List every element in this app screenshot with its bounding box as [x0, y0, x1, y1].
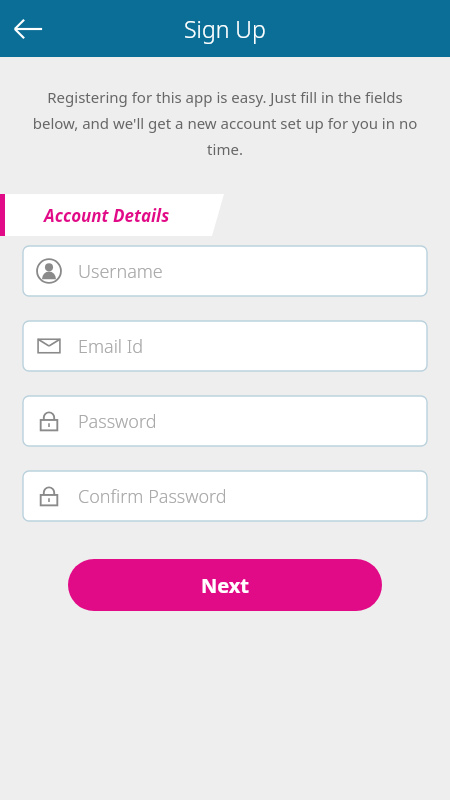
staticText: Password [78, 409, 157, 434]
staticText: Username [78, 259, 163, 284]
button[interactable]: Account Details [0, 194, 450, 236]
staticText: Registering for this app is easy. Just f… [26, 87, 424, 160]
button[interactable]: Password [23, 396, 427, 446]
staticText: Account Details [44, 204, 170, 227]
staticText: Email Id [78, 334, 144, 359]
button[interactable]: Back [4, 5, 52, 53]
button[interactable]: Confirm Password [23, 471, 427, 521]
button[interactable]: Next [68, 559, 382, 611]
button[interactable]: Email Id [23, 321, 427, 371]
staticText: Sign Up [184, 13, 266, 44]
staticText: Confirm Password [78, 484, 227, 509]
button[interactable]: Username [23, 246, 427, 296]
staticText: Next [201, 572, 250, 599]
